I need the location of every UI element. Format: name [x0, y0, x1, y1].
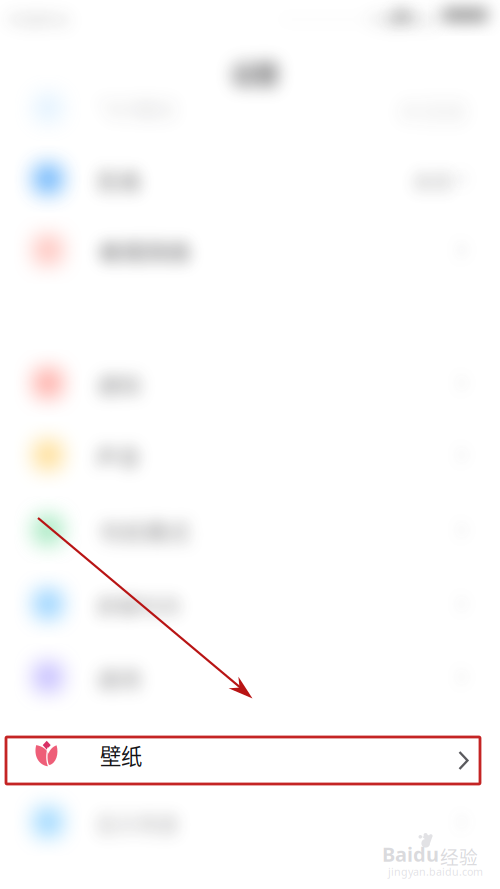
staticText: 壁纸 — [100, 740, 142, 770]
staticText: jingyan.baidu.com — [388, 864, 483, 879]
staticText: 经验 — [440, 842, 478, 869]
staticText: Baidu — [382, 840, 439, 868]
button[interactable]: 壁纸 — [0, 0, 474, 47]
